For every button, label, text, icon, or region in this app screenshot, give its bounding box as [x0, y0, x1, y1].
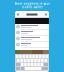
staticText: Share any photo in your [14, 2, 49, 5]
button[interactable] [15, 24, 49, 30]
button[interactable]: Key [28, 63, 30, 66]
button[interactable]: More [45, 13, 47, 15]
button[interactable] [15, 36, 49, 42]
button[interactable]: Key [29, 55, 31, 58]
button[interactable]: Key [34, 63, 36, 66]
button[interactable]: Key [24, 63, 27, 66]
button[interactable] [15, 30, 49, 36]
button[interactable]: Key [41, 59, 43, 62]
button[interactable] [15, 42, 49, 48]
button[interactable]: Key [20, 59, 23, 62]
button[interactable]: Back [17, 13, 19, 15]
button[interactable]: Key [32, 55, 35, 58]
button[interactable]: Key [42, 55, 45, 58]
button[interactable]: Key [34, 59, 37, 62]
button[interactable]: Key [27, 59, 30, 62]
button[interactable]: Key [37, 63, 40, 66]
staticText: mobile wallet [21, 5, 42, 9]
button[interactable]: Key [19, 55, 22, 58]
